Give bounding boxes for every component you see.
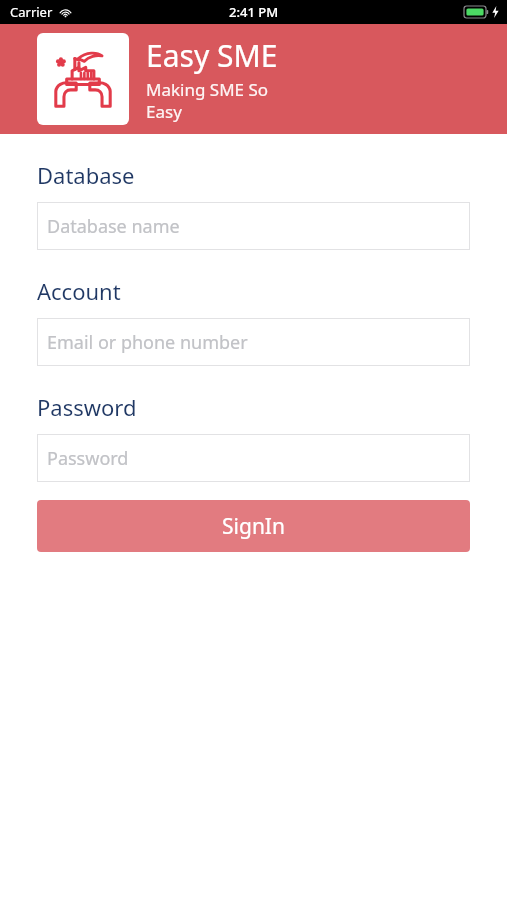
staticText: Carrier (10, 3, 53, 21)
staticText: 2:41 PM (229, 3, 279, 21)
staticText: Making SME So Easy (146, 78, 281, 123)
staticText: Account (37, 276, 121, 306)
button[interactable]: Database name (37, 202, 470, 250)
button[interactable]: SignIn (37, 500, 470, 552)
staticText: Email or phone number (47, 330, 248, 355)
staticText: SignIn (222, 512, 285, 541)
staticText: Password (37, 392, 137, 422)
button[interactable]: Email or phone number (37, 318, 470, 366)
staticText: Database (37, 160, 135, 190)
staticText: Password (47, 446, 129, 471)
button[interactable]: Password (37, 434, 470, 482)
staticText: Easy SME (146, 35, 278, 76)
staticText: Database name (47, 214, 180, 239)
